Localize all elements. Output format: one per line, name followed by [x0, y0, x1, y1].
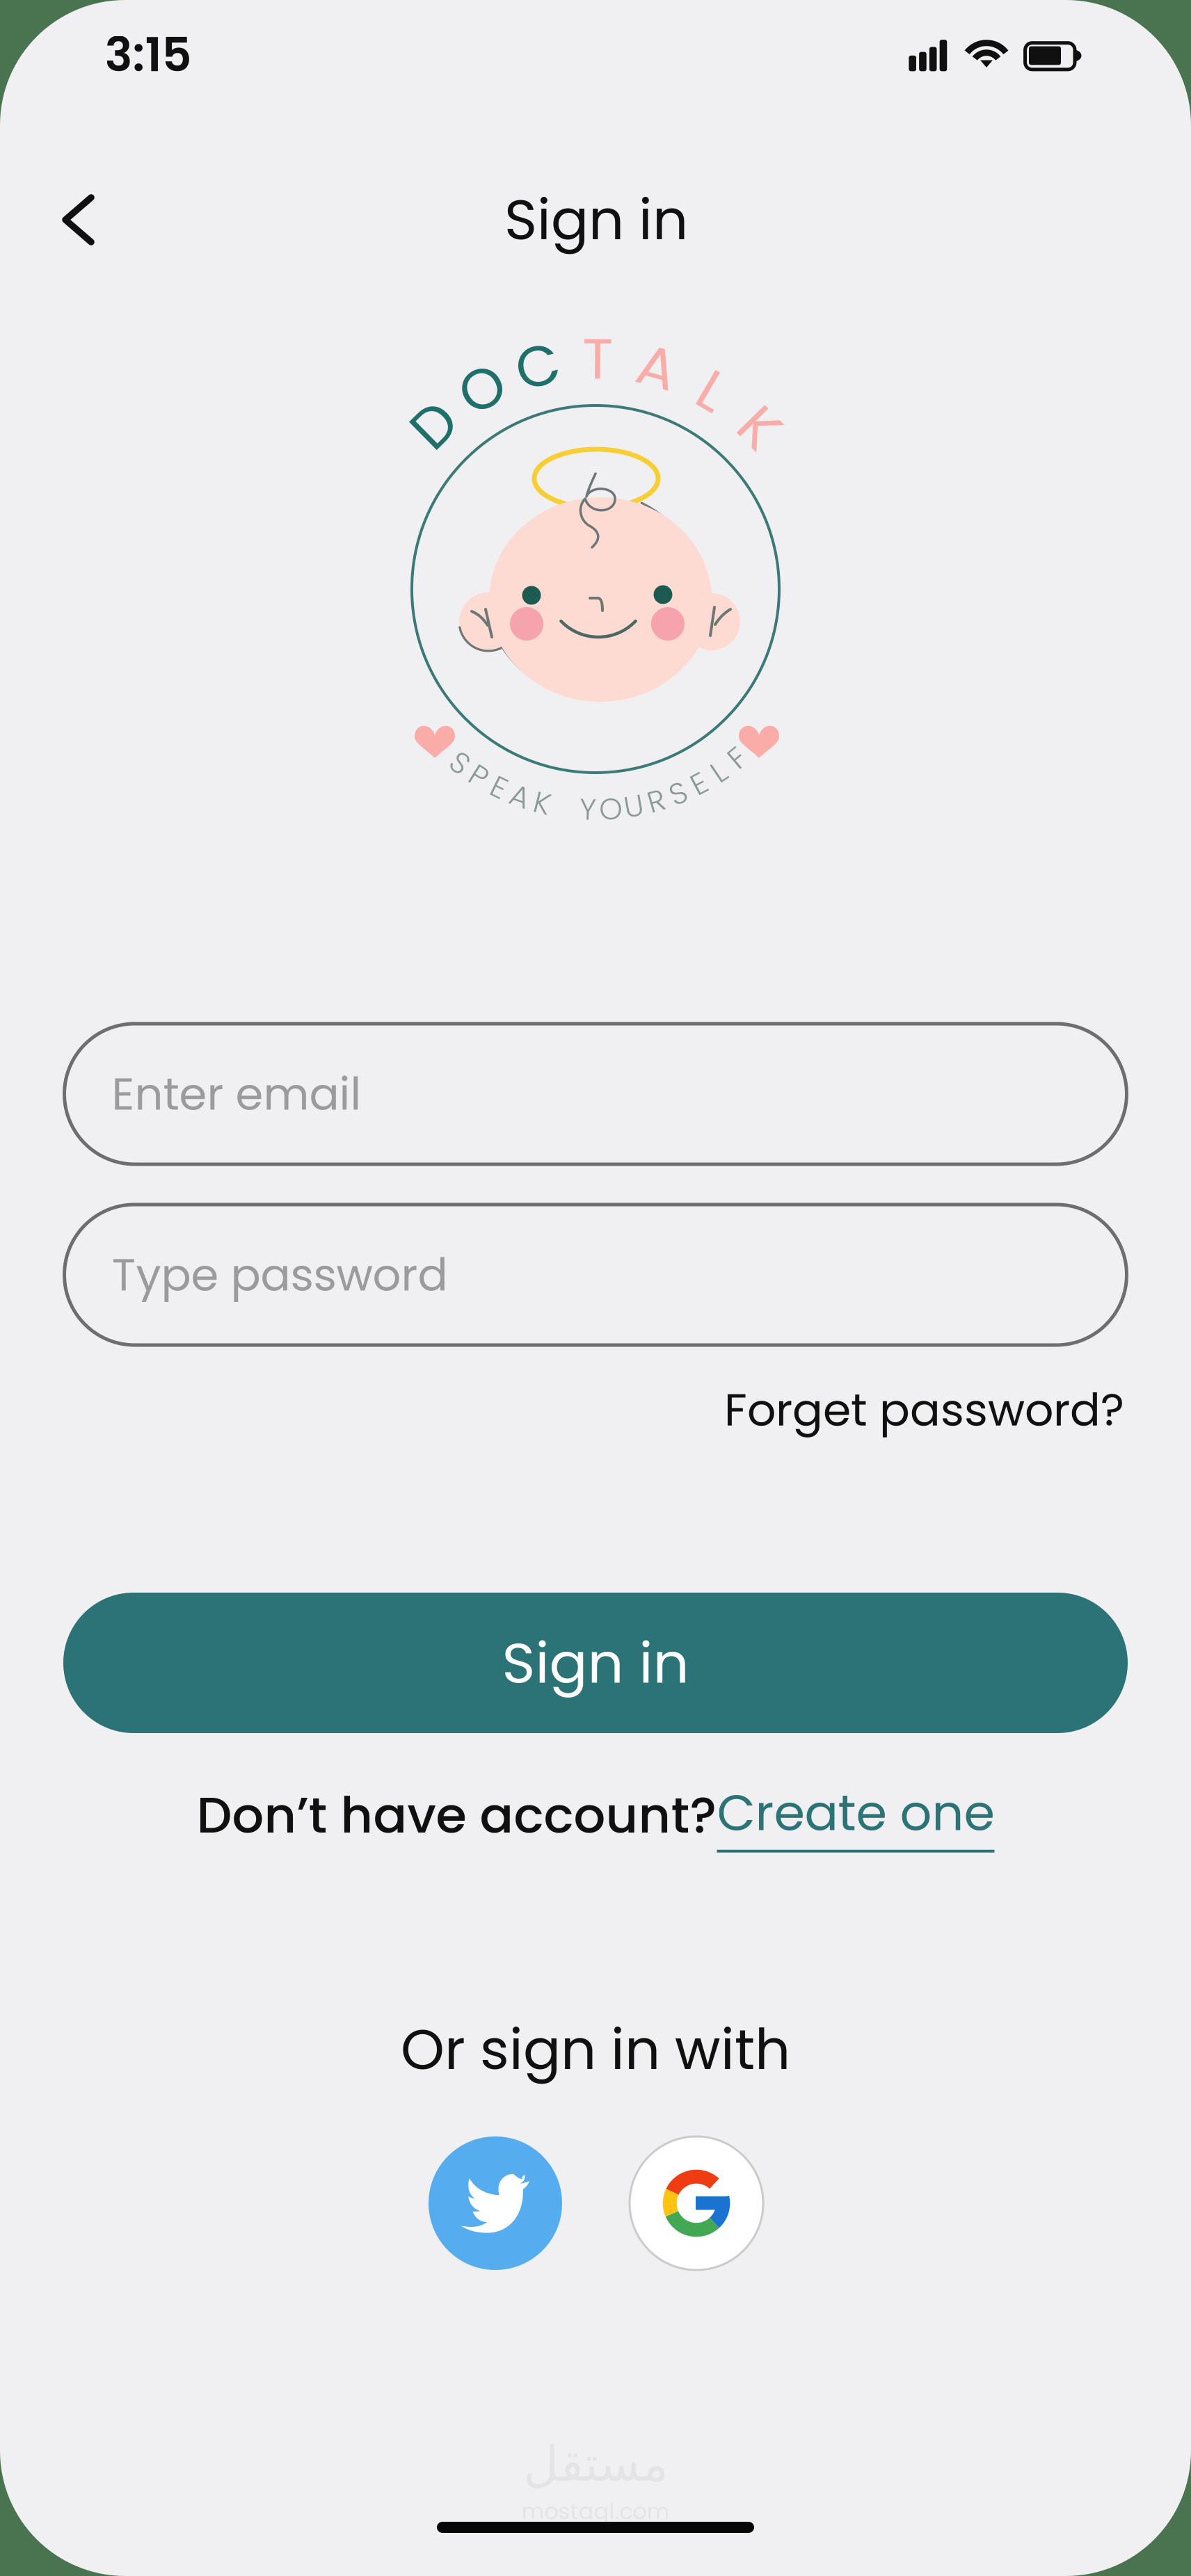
staticText: P — [470, 755, 487, 797]
button[interactable]: Back — [39, 177, 118, 262]
button[interactable]: Type password — [64, 1205, 1127, 1345]
staticText: Forget password? — [724, 1378, 1124, 1441]
button[interactable]: Sign in with Google — [630, 2136, 763, 2270]
staticText: C — [516, 327, 560, 406]
staticText: 3:15 — [105, 22, 192, 87]
button[interactable]: Forget password? — [693, 1371, 1124, 1448]
staticText: D — [414, 385, 454, 465]
staticText: Sign in — [502, 1623, 689, 1702]
staticText: S — [670, 773, 686, 814]
staticText: O — [599, 788, 623, 830]
staticText: Create one — [717, 1778, 994, 1848]
staticText: R — [648, 780, 665, 822]
staticText: E — [692, 763, 706, 804]
staticText: Enter email — [112, 1063, 361, 1125]
button[interactable]: Enter email — [64, 1024, 1127, 1164]
staticText: A — [638, 328, 676, 407]
staticText: L — [713, 751, 725, 793]
button[interactable]: Sign in — [63, 1593, 1128, 1733]
staticText: K — [743, 388, 777, 467]
staticText: مستقل — [523, 2436, 668, 2492]
staticText: Type password — [112, 1244, 448, 1306]
staticText: Y — [579, 789, 596, 830]
staticText: mostaql.com — [521, 2496, 670, 2527]
staticText: Don’t have account? — [197, 1780, 717, 1850]
staticText: K — [534, 782, 550, 824]
staticText: F — [730, 737, 745, 779]
staticText: Sign in — [504, 181, 688, 259]
staticText: S — [451, 742, 468, 784]
staticText: A — [510, 775, 530, 817]
staticText: T — [582, 319, 613, 399]
button[interactable]: Sign in with Twitter — [429, 2136, 562, 2270]
staticText: E — [491, 766, 506, 808]
staticText: L — [700, 351, 725, 430]
staticText: O — [460, 349, 504, 428]
staticText: Or sign in with — [401, 2011, 790, 2088]
staticText: U — [624, 785, 644, 827]
button[interactable]: Create one — [717, 1778, 994, 1853]
